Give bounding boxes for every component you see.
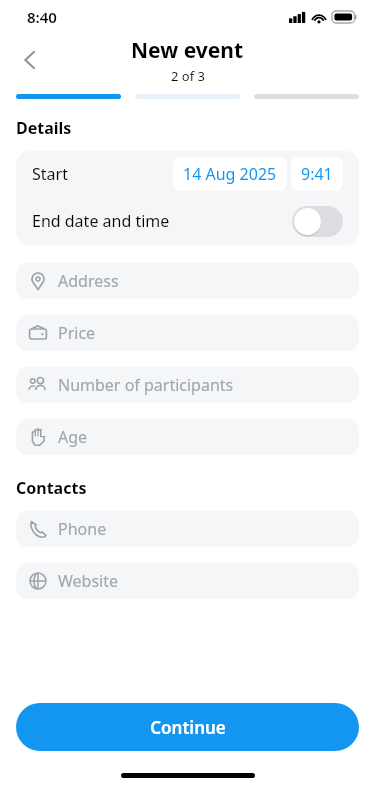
button[interactable]: Continue: [16, 703, 359, 751]
button[interactable]: Address: [16, 263, 359, 299]
staticText: Contacts: [16, 477, 87, 499]
staticText: Details: [16, 117, 72, 139]
staticText: 2 of 3: [171, 67, 205, 85]
button[interactable]: 14 Aug 2025: [173, 157, 287, 191]
staticText: Price: [58, 322, 96, 344]
staticText: 14 Aug 2025: [183, 163, 277, 185]
button[interactable]: 9:41: [291, 157, 343, 191]
button[interactable]: End date and time toggle: [292, 206, 343, 237]
button[interactable]: End date and time: [16, 197, 359, 245]
button[interactable]: Age: [16, 419, 359, 455]
staticText: Start: [32, 163, 68, 185]
staticText: New event: [131, 36, 244, 65]
button[interactable]: Back: [8, 38, 52, 82]
button[interactable]: Website: [16, 563, 359, 599]
staticText: 9:41: [301, 163, 333, 185]
button[interactable]: Phone: [16, 511, 359, 547]
button[interactable]: Price: [16, 315, 359, 351]
staticText: 8:40: [27, 7, 57, 27]
staticText: Age: [58, 426, 88, 448]
staticText: Phone: [58, 518, 107, 540]
staticText: Number of participants: [58, 374, 234, 396]
button[interactable]: Number of participants: [16, 367, 359, 403]
staticText: Website: [58, 570, 119, 592]
staticText: End date and time: [32, 210, 170, 232]
staticText: Address: [58, 270, 119, 292]
staticText: Continue: [150, 716, 226, 739]
